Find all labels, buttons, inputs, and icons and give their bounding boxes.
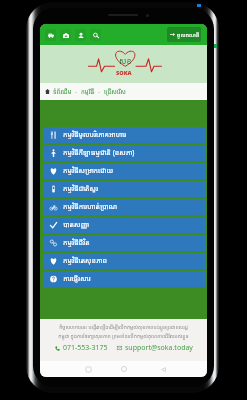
staticText: បាតសញ្ញា: [63, 220, 90, 230]
staticText: ចូលគណនី: [177, 31, 200, 38]
staticText: ទំព័រដើម: [53, 88, 72, 96]
staticText: សុខ: [119, 55, 132, 64]
button[interactable]: ការផ្ញើរសារ: [43, 271, 206, 287]
button[interactable]: Profile: [75, 29, 86, 41]
button[interactable]: កម្មវិធីកីឡាធម្មជាតិ (ឧសភា): [43, 145, 206, 161]
button[interactable]: Home: [117, 362, 131, 376]
button[interactable]: Recents: [81, 362, 95, 376]
button[interactable]: កម្មវិធីជាតិសួរ: [43, 181, 206, 197]
button[interactable]: កម្មវិធីសម្រាកជោយ: [43, 163, 206, 179]
staticText: ជ្រើសរើស: [104, 88, 126, 96]
staticText: កម្មវិធីជាតិសួរ: [63, 184, 99, 194]
staticText: កម្មវិធីជីវិត: [63, 238, 90, 248]
staticText: support@soka.today: [125, 343, 193, 353]
button[interactable]: បាតសញ្ញា: [43, 217, 206, 233]
staticText: កម្មវិធីតេសុខភាព: [63, 256, 107, 266]
button[interactable]: កម្មវិធីតេសុខភាព: [43, 253, 206, 269]
staticText: 071-553-3175: [63, 343, 108, 353]
button[interactable]: Back: [156, 362, 170, 376]
button[interactable]: ចូលគណនី: [167, 27, 201, 42]
button[interactable]: Ambulance: [45, 29, 56, 41]
staticText: កម្មវិធីមូលបរិភោគអាហារ: [63, 130, 127, 140]
button[interactable]: កម្មវិធីមូលបរិភោគអាហារ: [43, 127, 206, 143]
staticText: កម្មវិធីការហាត់ប្រាណ: [63, 202, 118, 212]
staticText: កម្មវិធីកីឡាធម្មជាតិ (ឧសភា): [63, 148, 135, 158]
button[interactable]: កម្មវិធីជីវិត: [43, 235, 206, 251]
staticText: ការផ្ញើរសារ: [63, 274, 91, 284]
staticText: កម្មវិធី: [81, 88, 95, 96]
staticText: កិច្ចសហការនេះ បង្កើតឡើងដើម្បីលើកកម្ពស់សុ…: [55, 324, 192, 339]
button[interactable]: Hospital: [60, 29, 71, 41]
staticText: កម្មវិធីសម្រាកជោយ: [63, 166, 114, 176]
staticText: -: [95, 88, 104, 96]
button[interactable]: Search: [90, 29, 101, 41]
staticText: -: [72, 88, 81, 96]
staticText: SOKA: [116, 69, 132, 76]
button[interactable]: កម្មវិធីការហាត់ប្រាណ: [43, 199, 206, 215]
